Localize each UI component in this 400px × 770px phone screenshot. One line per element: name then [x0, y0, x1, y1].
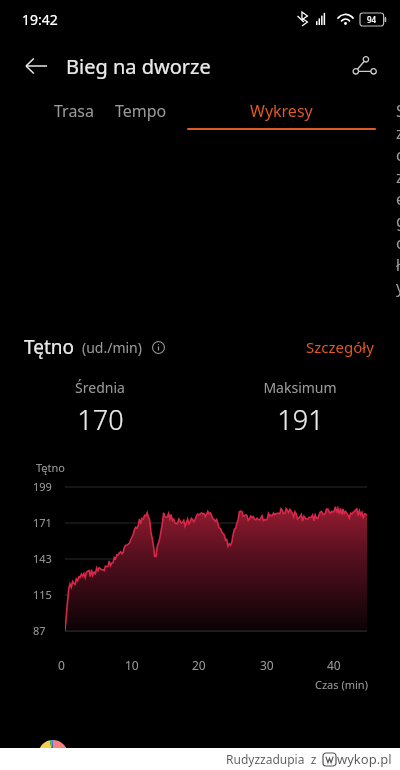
- button[interactable]: Back: [14, 44, 58, 88]
- staticText: 19:42: [22, 10, 58, 29]
- staticText: Szczegóły: [306, 337, 374, 357]
- staticText: 87: [33, 623, 46, 638]
- button[interactable]: Trasa: [44, 94, 105, 136]
- staticText: 170: [77, 401, 124, 438]
- button[interactable]: Tempo: [105, 94, 177, 136]
- staticText: Tętno: [24, 334, 75, 360]
- button[interactable]: Share: [342, 44, 386, 88]
- staticText: (ud./min): [82, 338, 142, 357]
- button[interactable]: Szczegóły: [304, 334, 376, 360]
- staticText: Rudyzzadupia z: [226, 751, 317, 767]
- button[interactable]: Średnia: [0, 378, 200, 438]
- button[interactable]: Ekstremalna: [146, 740, 380, 770]
- staticText: 191: [277, 401, 324, 438]
- staticText: Bieg na dworze: [66, 53, 211, 80]
- button[interactable]: [20, 740, 130, 770]
- staticText: Średnia: [75, 378, 125, 397]
- staticText: 171: [33, 515, 52, 530]
- staticText: 199: [33, 479, 52, 494]
- staticText: 30: [260, 657, 274, 673]
- staticText: wykop.pl: [337, 750, 392, 768]
- button[interactable]: Wykresy: [177, 94, 386, 136]
- staticText: 10: [125, 657, 139, 673]
- staticText: Tempo: [115, 100, 167, 122]
- staticText: 20: [192, 657, 206, 673]
- staticText: 40: [327, 657, 341, 673]
- staticText: Trasa: [54, 100, 95, 122]
- button[interactable]: Maksimum: [200, 378, 400, 438]
- button[interactable]: [0, 479, 400, 657]
- staticText: Wykresy: [250, 100, 313, 122]
- staticText: 115: [33, 587, 52, 602]
- staticText: Czas (min): [315, 677, 368, 692]
- staticText: 143: [33, 551, 52, 566]
- staticText: 0: [58, 657, 65, 673]
- staticText: Tętno: [36, 460, 65, 475]
- staticText: Ekstremalna: [165, 746, 247, 765]
- staticText: 30 min: [308, 746, 354, 765]
- button[interactable]: Info: [148, 337, 168, 357]
- staticText: Maksimum: [263, 378, 337, 397]
- staticText: 94: [367, 14, 377, 25]
